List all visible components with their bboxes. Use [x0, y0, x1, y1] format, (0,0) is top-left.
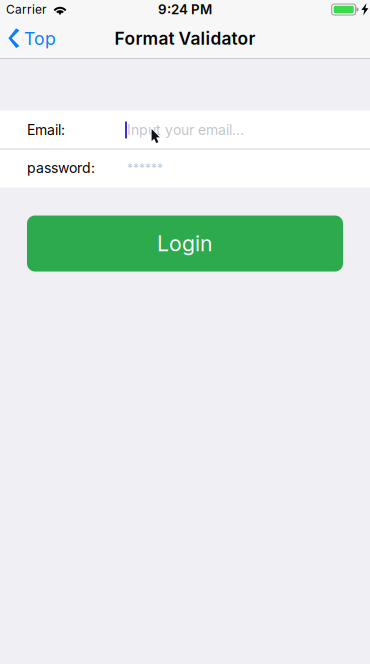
staticText: Top — [24, 28, 56, 49]
staticText: Format Validator — [114, 28, 255, 49]
staticText: Input your email... — [127, 121, 244, 138]
staticText: Email: — [27, 121, 65, 138]
staticText: ****** — [127, 161, 163, 175]
staticText: Carrier — [6, 2, 47, 17]
button[interactable]: Top — [0, 19, 66, 58]
button[interactable]: password: — [0, 149, 370, 186]
button[interactable]: Email: — [0, 111, 370, 148]
staticText: Login — [157, 231, 213, 256]
staticText: 9:24 PM — [158, 1, 212, 17]
button[interactable]: Login — [27, 215, 343, 271]
staticText: password: — [27, 159, 95, 176]
